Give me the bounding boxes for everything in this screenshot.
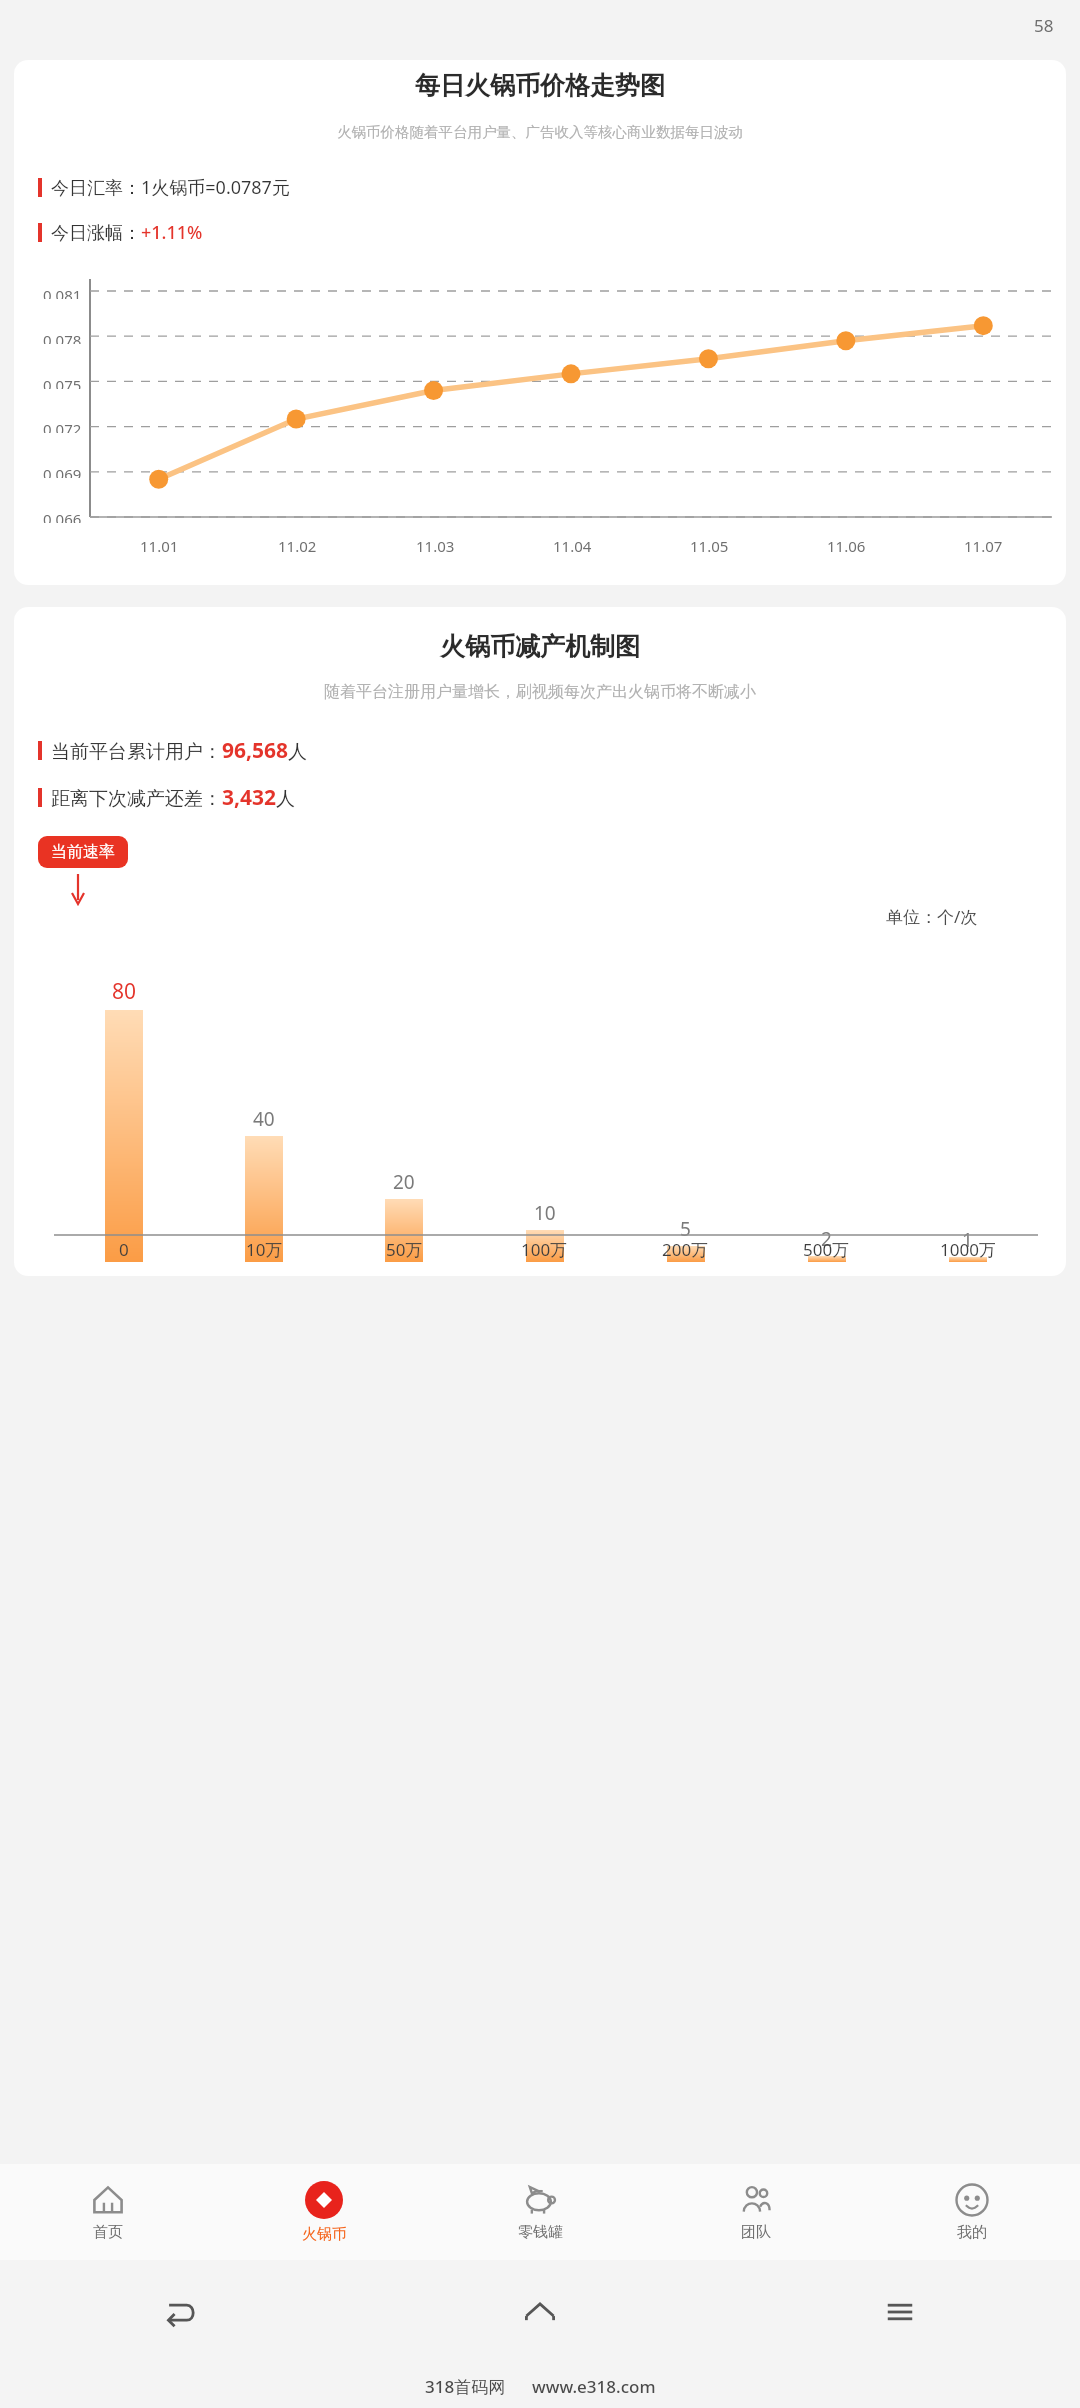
staticText: 随着平台注册用户量增长，刷视频每次产出火锅币将不断减小: [14, 682, 1066, 702]
staticText: 距离下次减产还差：3,432人: [51, 783, 296, 812]
staticText: 火锅币: [302, 2225, 347, 2244]
staticText: 11.06: [827, 536, 866, 556]
staticText: 0.075: [43, 375, 82, 389]
staticText: 500万: [803, 1238, 850, 1261]
staticText: 1: [962, 1227, 973, 1253]
staticText: 0.072: [43, 419, 82, 433]
staticText: 每日火锅币价格走势图: [14, 70, 1066, 101]
staticText: 11.07: [964, 536, 1003, 556]
button[interactable]: Recents: [720, 2260, 1080, 2364]
staticText: 20: [393, 1169, 415, 1195]
button[interactable]: 火锅币: [216, 2164, 432, 2260]
staticText: 40: [253, 1106, 275, 1132]
staticText: 11.05: [690, 536, 729, 556]
staticText: 火锅币价格随着平台用户量、广告收入等核心商业数据每日波动: [14, 123, 1066, 141]
staticText: 首页: [93, 2223, 123, 2242]
staticText: 5: [680, 1216, 691, 1242]
staticText: 2: [821, 1226, 832, 1252]
staticText: 0.069: [43, 464, 82, 478]
staticText: 0: [119, 1238, 129, 1261]
staticText: 318首码网: [425, 2375, 506, 2398]
button[interactable]: Back: [0, 2260, 360, 2364]
staticText: 当前平台累计用户：96,568人: [51, 736, 308, 765]
staticText: 0.078: [43, 330, 82, 344]
staticText: 0.081: [43, 285, 82, 299]
staticText: 11.01: [140, 536, 179, 556]
button[interactable]: 团队: [648, 2164, 864, 2260]
button[interactable]: 我的: [864, 2164, 1080, 2260]
staticText: 团队: [741, 2223, 771, 2242]
staticText: 今日涨幅：+1.11%: [51, 220, 203, 245]
staticText: 零钱罐: [518, 2223, 563, 2242]
staticText: 58: [1034, 14, 1054, 37]
button[interactable]: 首页: [0, 2164, 216, 2260]
staticText: 11.04: [553, 536, 592, 556]
staticText: 11.03: [416, 536, 455, 556]
staticText: 火锅币减产机制图: [14, 631, 1066, 662]
button[interactable]: 零钱罐: [432, 2164, 648, 2260]
staticText: 1000万: [940, 1238, 996, 1261]
staticText: 我的: [957, 2223, 987, 2242]
staticText: 10: [534, 1200, 556, 1226]
staticText: 单位：个/次: [886, 905, 978, 928]
staticText: www.e318.com: [532, 2375, 656, 2398]
staticText: 0.066: [43, 509, 82, 523]
staticText: 80: [112, 977, 137, 1006]
staticText: 200万: [662, 1238, 709, 1261]
staticText: 100万: [521, 1238, 568, 1261]
button[interactable]: Home: [360, 2260, 720, 2364]
staticText: 当前速率: [51, 842, 115, 862]
staticText: 11.02: [278, 536, 317, 556]
staticText: 今日汇率：1火锅币=0.0787元: [51, 175, 290, 200]
staticText: 50万: [386, 1238, 423, 1261]
staticText: 10万: [246, 1238, 283, 1261]
button[interactable]: 当前速率: [51, 842, 115, 862]
